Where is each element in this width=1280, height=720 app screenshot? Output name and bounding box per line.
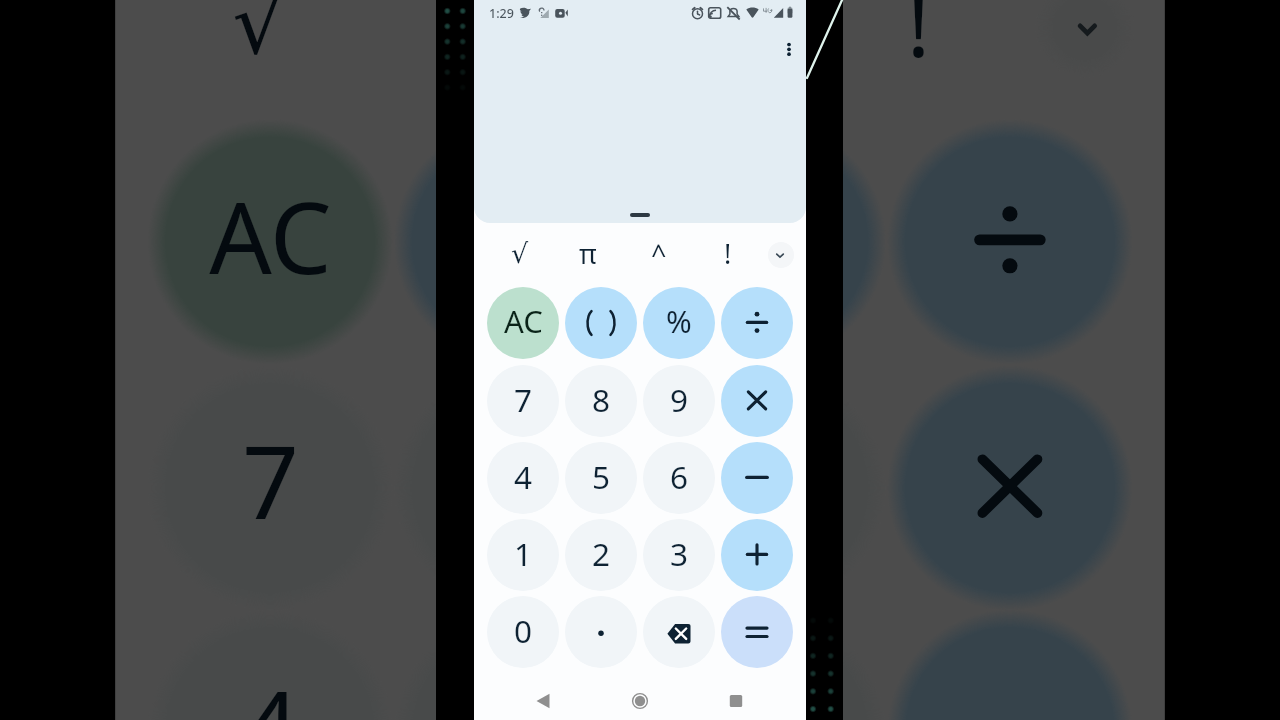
button[interactable]: Recent apps <box>714 679 758 720</box>
button[interactable]: 9 <box>643 365 715 437</box>
button[interactable]: Backspace <box>643 596 715 668</box>
staticText: 2 <box>592 532 611 575</box>
button[interactable]: Home <box>618 679 662 720</box>
staticText: π <box>579 235 597 272</box>
staticText: 6 <box>670 455 689 498</box>
staticText: AC <box>209 169 332 302</box>
staticText: ! <box>907 0 930 82</box>
staticText: ! <box>724 235 732 272</box>
staticText: 4 <box>514 455 533 498</box>
staticText: 7 <box>242 413 299 549</box>
button[interactable]: % <box>643 287 715 359</box>
button[interactable]: Decimal point <box>565 596 637 668</box>
staticText: 8 <box>592 378 611 421</box>
button[interactable]: Plus <box>721 519 793 591</box>
button[interactable]: 7 <box>487 365 559 437</box>
button[interactable]: Back <box>521 679 565 720</box>
button[interactable]: 2 <box>565 519 637 591</box>
staticText: 5 <box>592 455 611 498</box>
staticText: 0 <box>514 609 533 652</box>
button[interactable]: 0 <box>487 596 559 668</box>
button[interactable]: ^ <box>635 231 683 279</box>
button[interactable]: √ <box>496 231 544 279</box>
staticText: 9 <box>670 378 689 421</box>
button[interactable]: Divide <box>721 287 793 359</box>
button[interactable]: 5 <box>565 442 637 514</box>
staticText: 4 <box>242 658 299 720</box>
button[interactable]: Multiply <box>721 365 793 437</box>
staticText: AC <box>504 300 543 342</box>
staticText: 3 <box>670 532 689 575</box>
staticText: 1:29 <box>489 5 514 22</box>
staticText: % <box>666 300 692 342</box>
button[interactable]: 4 <box>487 442 559 514</box>
staticText: 1 <box>514 532 533 575</box>
button[interactable]: More functions <box>768 242 794 268</box>
button[interactable]: ! <box>704 231 752 279</box>
button[interactable]: 3 <box>643 519 715 591</box>
button[interactable]: π <box>564 231 612 279</box>
staticText: ^ <box>651 235 667 272</box>
button[interactable]: Minus <box>721 442 793 514</box>
staticText: √ <box>511 238 529 269</box>
staticText: 7 <box>514 378 533 421</box>
button[interactable]: 6 <box>643 442 715 514</box>
button[interactable]: Equals <box>721 596 793 668</box>
button[interactable]: 8 <box>565 365 637 437</box>
button[interactable]: More options <box>773 35 805 63</box>
staticText: √ <box>232 0 287 73</box>
button[interactable]: Parentheses <box>565 287 637 359</box>
button[interactable]: AC <box>487 287 559 359</box>
button[interactable]: 1 <box>487 519 559 591</box>
